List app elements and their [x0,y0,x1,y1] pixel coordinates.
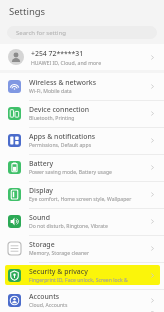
staticText: Cloud, Accounts [29,302,68,309]
staticText: Wireless & networks [29,78,97,87]
staticText: Wi-Fi, Mobile data [29,88,72,95]
staticText: Security & privacy [29,267,88,276]
staticText: Search for setting [16,29,66,37]
staticText: Memory, Storage cleaner [29,250,90,257]
staticText: Apps & notifications [29,132,96,141]
other: Device connection [8,107,21,120]
button[interactable]: Accounts [0,289,164,312]
staticText: Display [29,186,53,195]
other: Accounts [8,294,21,307]
staticText: Storage [29,240,55,249]
button[interactable]: Security and privacy [0,262,164,289]
other: Display [8,188,21,201]
staticText: Permissions, Default apps [29,142,92,149]
other: Storage [8,242,21,255]
staticText: Do not disturb, Ringtone, Vibrate [29,223,108,230]
staticText: Device connection [29,105,90,114]
staticText: HUAWEI ID, Cloud, and more [31,59,102,66]
staticText: Settings [9,5,46,18]
other: Sound [8,215,21,228]
staticText: +254 72*****31 [31,49,84,58]
button[interactable]: +254 72*****31 [0,44,164,70]
staticText: Fingerprint ID, Face unlock, Screen lock… [29,277,148,284]
button[interactable]: Display [0,181,164,208]
button[interactable]: Device connection [0,100,164,127]
staticText: Eye comfort, Home screen style, Wallpape… [29,196,132,203]
staticText: Accounts [29,292,60,301]
button[interactable]: Battery [0,154,164,181]
staticText: Power saving mode, Battery usage [29,169,112,176]
button[interactable]: Apps and notifications [0,127,164,154]
other: Battery [8,161,21,174]
button[interactable]: Sound [0,208,164,235]
button[interactable]: Storage [0,235,164,262]
other: Wireless and networks [8,80,21,93]
staticText: Bluetooth, Printing [29,115,75,122]
button[interactable]: Wireless and networks [0,73,164,100]
staticText: Sound [29,213,50,222]
other: Apps and notifications [8,134,21,147]
other: Security and privacy [8,269,21,282]
staticText: Battery [29,159,54,168]
button[interactable]: Search for setting [7,26,157,39]
